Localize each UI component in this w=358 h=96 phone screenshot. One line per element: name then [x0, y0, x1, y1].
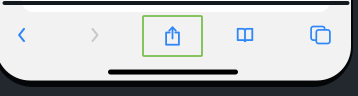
- button[interactable]: Forward: [71, 13, 119, 57]
- button[interactable]: Tabs: [296, 13, 344, 57]
- button[interactable]: Bookmarks: [221, 13, 269, 57]
- button[interactable]: Share: [143, 16, 202, 56]
- button[interactable]: Back: [0, 13, 45, 57]
